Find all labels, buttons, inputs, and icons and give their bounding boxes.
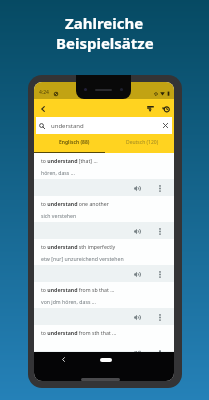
button[interactable]: Spell check [143,101,158,116]
button[interactable]: Play pronunciation [131,182,143,194]
button[interactable]: Deutsch (120) [104,134,174,153]
staticText: Englisch (88) [59,139,90,146]
button[interactable]: to understand from sth that ... [34,325,174,351]
staticText: hören, dass ... [41,169,75,176]
staticText: von jdm hören, dass ... [41,298,96,305]
button[interactable]: More options [154,182,166,194]
staticText: to understand from sth that ... [41,329,117,336]
button[interactable]: History [158,101,173,116]
button[interactable]: Play pronunciation [131,311,143,323]
staticText: sich verstehen [41,212,77,219]
button[interactable]: More options [154,351,166,352]
button[interactable]: Clear [161,121,170,130]
button[interactable]: Play pronunciation [131,225,143,237]
staticText: to understand [that] ... [41,157,98,164]
button[interactable]: Home [100,358,112,362]
button[interactable]: to understand [that] ... [34,153,174,179]
staticText: Beispielsätze [56,33,154,53]
button[interactable]: Play pronunciation [131,351,143,352]
staticText: Zahlreiche [65,13,144,33]
staticText: to understand sth imperfectly [41,243,116,250]
button[interactable]: More options [154,225,166,237]
button[interactable]: understand [36,117,172,134]
staticText: understand [51,122,84,130]
button[interactable]: to understand one another [34,196,174,222]
staticText: to understand from sb that ... [41,286,115,293]
staticText: 4:24 [39,89,49,96]
button[interactable]: More options [154,311,166,323]
button[interactable]: Englisch (88) [34,134,104,153]
staticText: Deutsch (120) [126,139,159,146]
button[interactable]: to understand from sb that ... [34,282,174,308]
button[interactable]: to understand sth imperfectly [34,239,174,265]
button[interactable]: Play pronunciation [131,268,143,280]
staticText: etw [nur] unzureichend verstehen [41,255,124,262]
button[interactable]: Back [34,100,51,117]
button[interactable]: Back [58,354,69,365]
button[interactable]: More options [154,268,166,280]
staticText: to understand one another [41,200,109,207]
